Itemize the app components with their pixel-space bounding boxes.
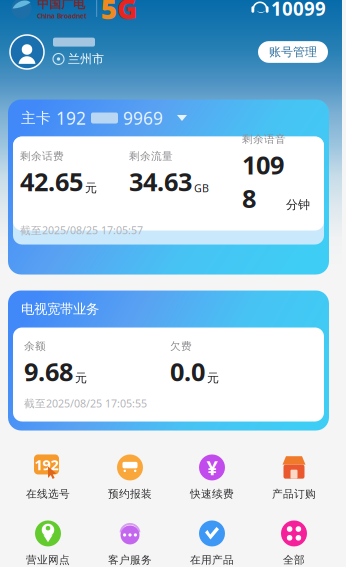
staticText: 产品订购: [272, 487, 316, 500]
staticText: 9.68: [24, 355, 73, 388]
staticText: 9969: [123, 106, 163, 129]
staticText: 快速续费: [190, 487, 234, 500]
button[interactable]: 10099: [250, 0, 326, 21]
staticText: 0.0: [170, 355, 205, 388]
staticText: 剩余流量: [129, 149, 173, 163]
staticText: 截至2025/08/25 17:05:55: [24, 396, 147, 410]
staticText: 1098: [242, 148, 284, 215]
staticText: 元: [75, 370, 87, 385]
staticText: 欠费: [170, 339, 192, 353]
staticText: 在用产品: [190, 553, 234, 566]
staticText: 兰州市: [68, 52, 104, 66]
staticText: GB: [194, 181, 209, 195]
button[interactable]: 全部: [253, 512, 335, 567]
staticText: 余额: [24, 339, 46, 353]
staticText: 34.63: [129, 165, 192, 198]
button[interactable]: 192: [7, 446, 89, 508]
staticText: 在线选号: [26, 487, 70, 500]
staticText: ¥: [206, 454, 217, 481]
staticText: 截至2025/08/25 17:05:57: [20, 223, 143, 237]
staticText: 5: [101, 0, 117, 27]
staticText: 192: [34, 455, 58, 474]
staticText: 分钟: [286, 197, 310, 212]
staticText: 元: [207, 370, 219, 385]
staticText: 营业网点: [26, 553, 70, 566]
staticText: 剩余话费: [20, 149, 64, 163]
button[interactable]: 客户服务: [89, 512, 171, 567]
button[interactable]: 在用产品: [171, 512, 253, 567]
staticText: 中国广电: [37, 0, 85, 11]
staticText: 元: [85, 180, 97, 195]
staticText: 主卡: [21, 109, 51, 127]
button[interactable]: 营业网点: [7, 512, 89, 567]
staticText: China Broadnet: [37, 11, 87, 20]
staticText: 电视宽带业务: [21, 301, 99, 317]
staticText: 客户服务: [108, 553, 152, 566]
staticText: 预约报装: [108, 487, 152, 500]
staticText: 全部: [283, 553, 305, 566]
button[interactable]: 产品订购: [253, 446, 335, 508]
staticText: 10099: [271, 0, 326, 21]
staticText: 42.65: [20, 165, 83, 198]
button[interactable]: 账号管理: [258, 41, 328, 63]
button[interactable]: 预约报装: [89, 446, 171, 508]
staticText: 账号管理: [269, 45, 317, 59]
staticText: 剩余语音: [242, 133, 286, 146]
staticText: 192: [56, 106, 86, 129]
staticText: G: [117, 0, 138, 27]
button[interactable]: ¥: [171, 446, 253, 508]
